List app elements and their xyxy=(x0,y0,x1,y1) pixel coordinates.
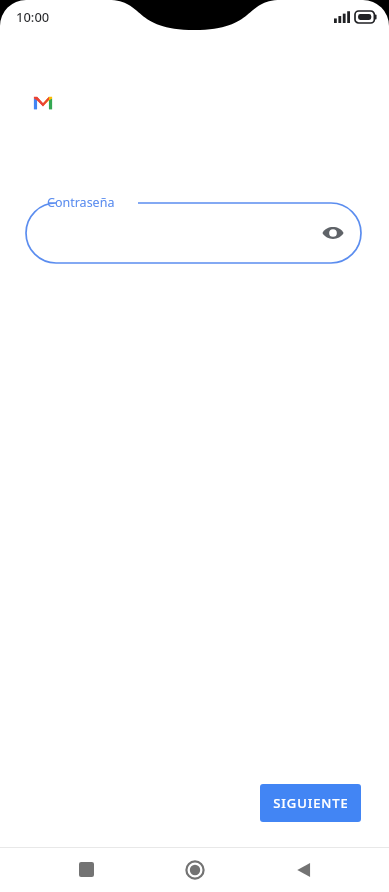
staticText: Contraseña xyxy=(47,194,115,211)
button[interactable]: Back xyxy=(280,847,328,892)
button[interactable]: Mostrar contraseña xyxy=(315,215,351,251)
button[interactable]: Recent apps xyxy=(62,847,110,892)
button[interactable]: Home xyxy=(171,847,219,892)
staticText: 10:00 xyxy=(16,8,50,26)
staticText: SIGUIENTE xyxy=(273,794,349,812)
button[interactable]: Contraseña xyxy=(26,194,361,272)
button[interactable]: SIGUIENTE xyxy=(260,784,361,822)
